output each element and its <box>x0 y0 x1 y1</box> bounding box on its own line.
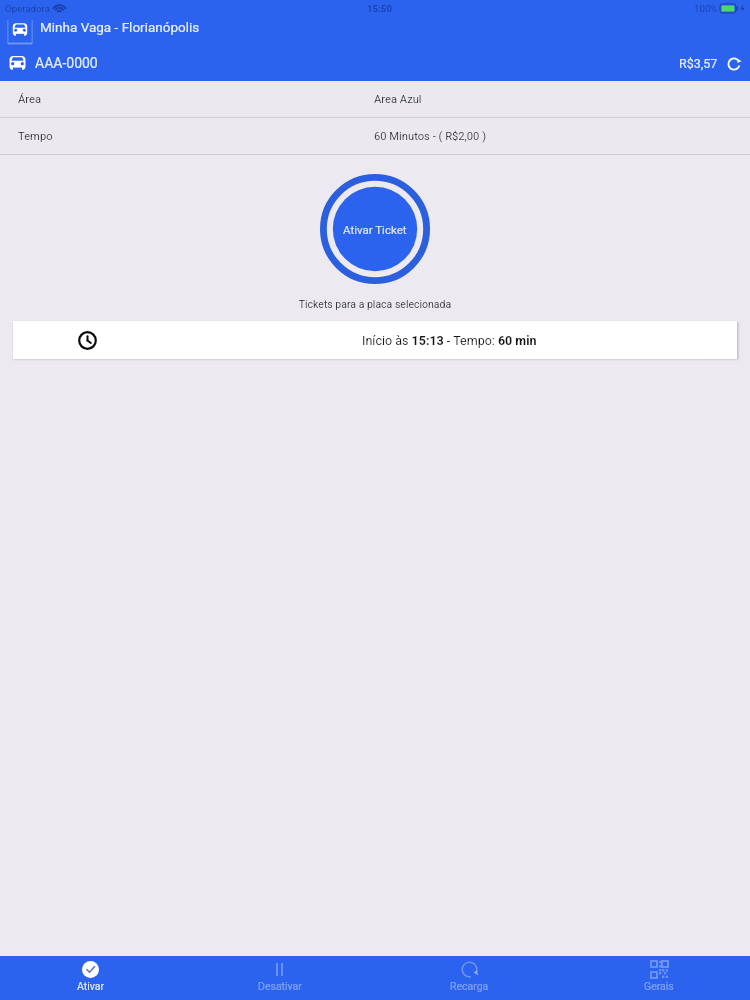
staticText: Tickets para a placa selecionada <box>0 298 750 310</box>
staticText: Tempo <box>18 130 53 143</box>
staticText: Gerais <box>644 980 674 992</box>
button[interactable]: Área <box>0 81 750 117</box>
staticText: Recarga <box>450 980 489 992</box>
staticText: 60 Minutos - ( R$2,00 ) <box>374 130 487 143</box>
button[interactable]: Recarga <box>374 956 564 1000</box>
button[interactable]: Ativar Ticket <box>320 174 430 284</box>
staticText: 15:50 <box>367 3 392 14</box>
button[interactable]: Início às 15:13 - Tempo: 60 min <box>13 321 737 359</box>
staticText: 100% <box>694 3 718 14</box>
staticText: Minha Vaga - Florianópolis <box>40 19 200 35</box>
staticText: Operadora <box>5 3 50 14</box>
button[interactable]: Tempo <box>0 118 750 154</box>
staticText: Desativar <box>258 980 302 992</box>
button[interactable]: Ativar <box>0 956 185 1000</box>
button[interactable]: Desativar <box>185 956 374 1000</box>
staticText: AAA-0000 <box>35 55 98 71</box>
button[interactable]: Gerais <box>564 956 750 1000</box>
staticText: Ativar Ticket <box>343 223 407 236</box>
staticText: R$3,57 <box>679 56 718 71</box>
button[interactable]: Atualizar saldo <box>726 56 741 71</box>
staticText: Ativar <box>77 980 105 992</box>
staticText: Início às 15:13 - Tempo: 60 min <box>362 333 537 348</box>
staticText: Área <box>18 93 42 106</box>
staticText: Area Azul <box>374 93 422 106</box>
button[interactable]: Veículo <box>7 19 33 45</box>
